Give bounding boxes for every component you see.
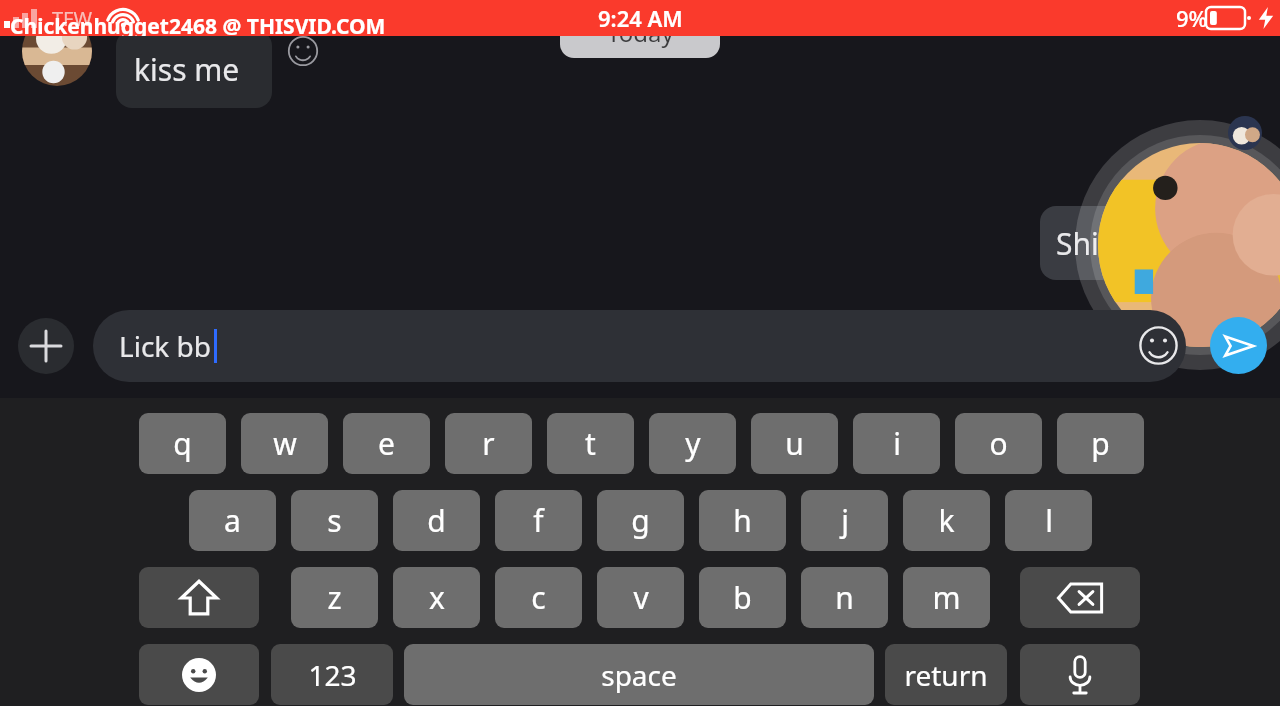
button[interactable]: q — [139, 413, 226, 474]
button[interactable]: t — [547, 413, 634, 474]
button[interactable]: l — [1005, 490, 1092, 551]
staticText: Today — [607, 16, 674, 49]
button[interactable]: g — [597, 490, 684, 551]
staticText: kiss me — [134, 49, 240, 90]
staticText: j — [841, 500, 849, 541]
button[interactable]: s — [291, 490, 378, 551]
button[interactable]: space — [404, 644, 874, 705]
button[interactable]: a — [189, 490, 276, 551]
button[interactable]: Add attachment — [18, 318, 74, 374]
staticText: d — [427, 500, 446, 541]
staticText: Chickenhugget2468 @ THISVID.COM — [10, 12, 386, 36]
staticText: k — [938, 500, 955, 541]
button[interactable]: return — [885, 644, 1007, 705]
button[interactable]: Shit — [1040, 206, 1160, 280]
staticText: space — [601, 656, 677, 694]
staticText: return — [904, 656, 988, 694]
staticText: s — [327, 500, 342, 541]
button[interactable]: h — [699, 490, 786, 551]
button[interactable]: p — [1057, 413, 1144, 474]
staticText: z — [327, 577, 342, 618]
button[interactable]: 123 — [271, 644, 393, 705]
button[interactable]: Backspace — [1020, 567, 1140, 628]
staticText: w — [273, 423, 297, 464]
staticText: 9:24 AM — [598, 3, 683, 33]
staticText: l — [1045, 500, 1053, 541]
button[interactable]: Lick bb — [93, 310, 1186, 382]
staticText: Lick bb — [119, 327, 212, 365]
staticText: Shit — [1056, 223, 1110, 264]
button[interactable]: n — [801, 567, 888, 628]
staticText: i — [893, 423, 901, 464]
staticText: y — [685, 423, 701, 464]
button[interactable]: Shift — [139, 567, 259, 628]
button[interactable]: m — [903, 567, 990, 628]
button[interactable]: u — [751, 413, 838, 474]
button[interactable]: i — [853, 413, 940, 474]
button[interactable]: Emoji — [1138, 325, 1179, 366]
button[interactable]: x — [393, 567, 480, 628]
staticText: a — [224, 500, 241, 541]
button[interactable]: c — [495, 567, 582, 628]
button[interactable]: kiss me — [116, 30, 272, 108]
staticText: g — [631, 500, 650, 541]
button[interactable]: k — [903, 490, 990, 551]
staticText: b — [733, 577, 752, 618]
staticText: v — [633, 577, 649, 618]
button[interactable]: React — [287, 35, 319, 67]
staticText: t — [585, 423, 596, 464]
button[interactable]: Emoji keyboard — [139, 644, 259, 705]
button[interactable]: d — [393, 490, 480, 551]
staticText: c — [531, 577, 546, 618]
staticText: x — [429, 577, 445, 618]
button[interactable]: Voice input — [1020, 644, 1140, 705]
button[interactable]: y — [649, 413, 736, 474]
button[interactable]: Send — [1210, 317, 1267, 374]
button[interactable]: v — [597, 567, 684, 628]
button[interactable]: e — [343, 413, 430, 474]
button[interactable]: b — [699, 567, 786, 628]
button[interactable]: f — [495, 490, 582, 551]
button[interactable]: w — [241, 413, 328, 474]
staticText: o — [989, 423, 1008, 464]
button[interactable]: j — [801, 490, 888, 551]
staticText: n — [835, 577, 854, 618]
staticText: e — [378, 423, 395, 464]
button[interactable]: r — [445, 413, 532, 474]
staticText: q — [173, 423, 192, 464]
button[interactable]: Video call — [1098, 143, 1280, 347]
staticText: 9% — [1176, 3, 1208, 33]
staticText: 123 — [308, 656, 357, 694]
staticText: p — [1091, 423, 1110, 464]
button[interactable]: z — [291, 567, 378, 628]
button[interactable]: o — [955, 413, 1042, 474]
staticText: h — [733, 500, 752, 541]
staticText: u — [785, 423, 804, 464]
staticText: m — [932, 577, 961, 618]
staticText: TFW — [52, 5, 93, 32]
staticText: f — [533, 500, 544, 541]
staticText: r — [482, 423, 495, 464]
